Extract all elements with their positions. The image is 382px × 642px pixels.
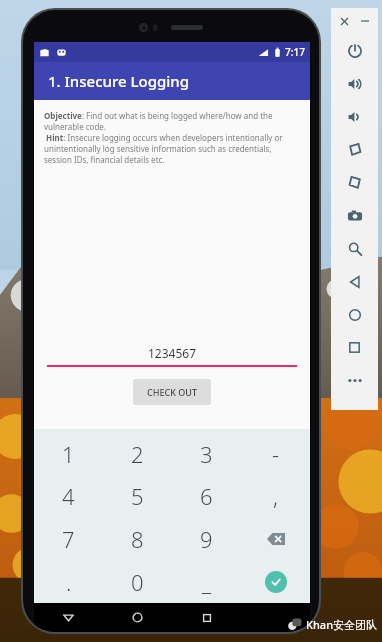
staticText: 7:17 — [285, 45, 305, 59]
staticText: 1 — [62, 439, 75, 469]
staticText: 7 — [62, 524, 75, 554]
button[interactable]: Home — [331, 298, 378, 331]
button[interactable]: Volume up — [331, 67, 378, 100]
button[interactable]: Enter — [241, 560, 310, 603]
button[interactable]: 9 — [172, 517, 241, 560]
button[interactable]: CHECK OUT — [133, 379, 211, 405]
button[interactable]: 5 — [103, 475, 172, 517]
button[interactable]: Back — [331, 265, 378, 298]
button[interactable]: 2 — [103, 433, 172, 475]
staticText: 4 — [62, 481, 75, 511]
staticText: 5 — [131, 481, 144, 511]
staticText: 1. Insecure Logging — [48, 71, 190, 91]
staticText: 6 — [200, 481, 213, 511]
button[interactable]: 6 — [172, 475, 241, 517]
button[interactable]: More — [331, 364, 378, 397]
button[interactable]: Power — [331, 34, 378, 67]
button[interactable]: Close — [337, 14, 351, 28]
button[interactable]: 0 — [103, 560, 172, 603]
staticText: - — [272, 439, 280, 469]
button[interactable]: Recent apps — [172, 603, 241, 632]
button[interactable]: 3 — [172, 433, 241, 475]
staticText: 0 — [131, 567, 144, 597]
button[interactable]: . — [34, 560, 103, 603]
button[interactable]: Minimize — [358, 14, 372, 28]
staticText: 8 — [131, 524, 144, 554]
button[interactable]: Zoom — [331, 232, 378, 265]
button[interactable]: Screenshot — [331, 199, 378, 232]
button[interactable]: 8 — [103, 517, 172, 560]
button[interactable]: 7 — [34, 517, 103, 560]
button[interactable]: Home — [103, 603, 172, 632]
staticText: 1234567 — [148, 345, 197, 361]
staticText: Objective: Find out what is being logged… — [44, 110, 300, 165]
staticText: _ — [202, 567, 212, 597]
button[interactable]: _ — [172, 560, 241, 603]
button[interactable]: 4 — [34, 475, 103, 517]
staticText: 3 — [200, 439, 213, 469]
button[interactable]: Backspace — [241, 517, 310, 560]
staticText: Khan安全团队 — [306, 617, 378, 632]
button[interactable]: Rotate right — [331, 166, 378, 199]
staticText: 2 — [131, 439, 144, 469]
button[interactable]: - — [241, 433, 310, 475]
button[interactable]: Overview — [331, 331, 378, 364]
button[interactable]: Volume down — [331, 100, 378, 133]
button[interactable]: Rotate left — [331, 133, 378, 166]
staticText: CHECK OUT — [147, 386, 197, 398]
staticText: 9 — [200, 524, 213, 554]
staticText: . — [66, 567, 72, 597]
button[interactable]: , — [241, 475, 310, 517]
staticText: , — [273, 481, 278, 511]
button[interactable]: Back — [34, 603, 103, 632]
button[interactable]: 1 — [34, 433, 103, 475]
